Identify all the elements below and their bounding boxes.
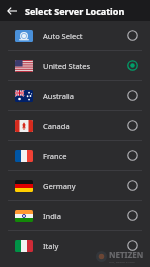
button[interactable]: France (0, 141, 150, 170)
staticText: Canada (43, 121, 127, 131)
button[interactable]: India (0, 201, 150, 230)
staticText: Germany (43, 181, 127, 191)
staticText: Auto Select (43, 31, 127, 41)
staticText: Italy (43, 241, 127, 251)
button[interactable]: Canada (0, 111, 150, 140)
button[interactable]: Auto Select (0, 21, 150, 50)
button[interactable]: Back (4, 3, 20, 19)
staticText: Select Server Location (25, 5, 125, 17)
staticText: India (43, 211, 127, 221)
button[interactable]: United States (0, 51, 150, 80)
staticText: France (43, 151, 127, 161)
button[interactable]: Italy (0, 231, 150, 260)
staticText: Australia (43, 91, 127, 101)
button[interactable]: Australia (0, 81, 150, 110)
button[interactable]: Germany (0, 171, 150, 200)
staticText: Tech, Reviews & News (109, 260, 135, 263)
staticText: United States (43, 61, 127, 71)
staticText: NETIZEN (109, 249, 144, 260)
